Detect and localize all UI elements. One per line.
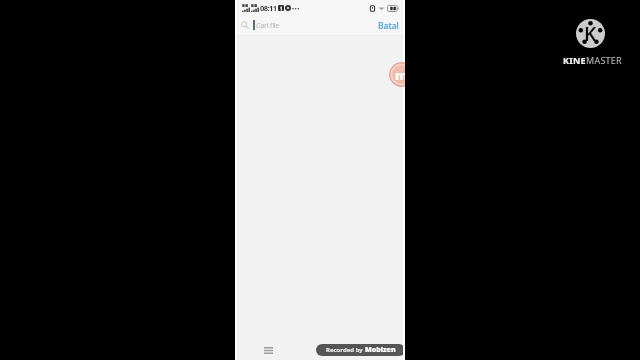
staticText: Batal (378, 20, 399, 32)
button[interactable]: Menu (259, 341, 277, 359)
staticText: Recorded by (326, 346, 365, 354)
staticText: KINE (563, 54, 586, 66)
button[interactable]: Mobizen recorder (389, 62, 405, 87)
staticText: Mobizen (365, 345, 396, 355)
staticText: K (584, 21, 597, 47)
staticText: MASTER (586, 54, 622, 66)
staticText: 08:11 (260, 3, 277, 13)
other: Search (241, 21, 249, 29)
staticText: Cari file (256, 20, 280, 30)
staticText: m (395, 66, 405, 84)
button[interactable]: Batal (377, 16, 400, 34)
